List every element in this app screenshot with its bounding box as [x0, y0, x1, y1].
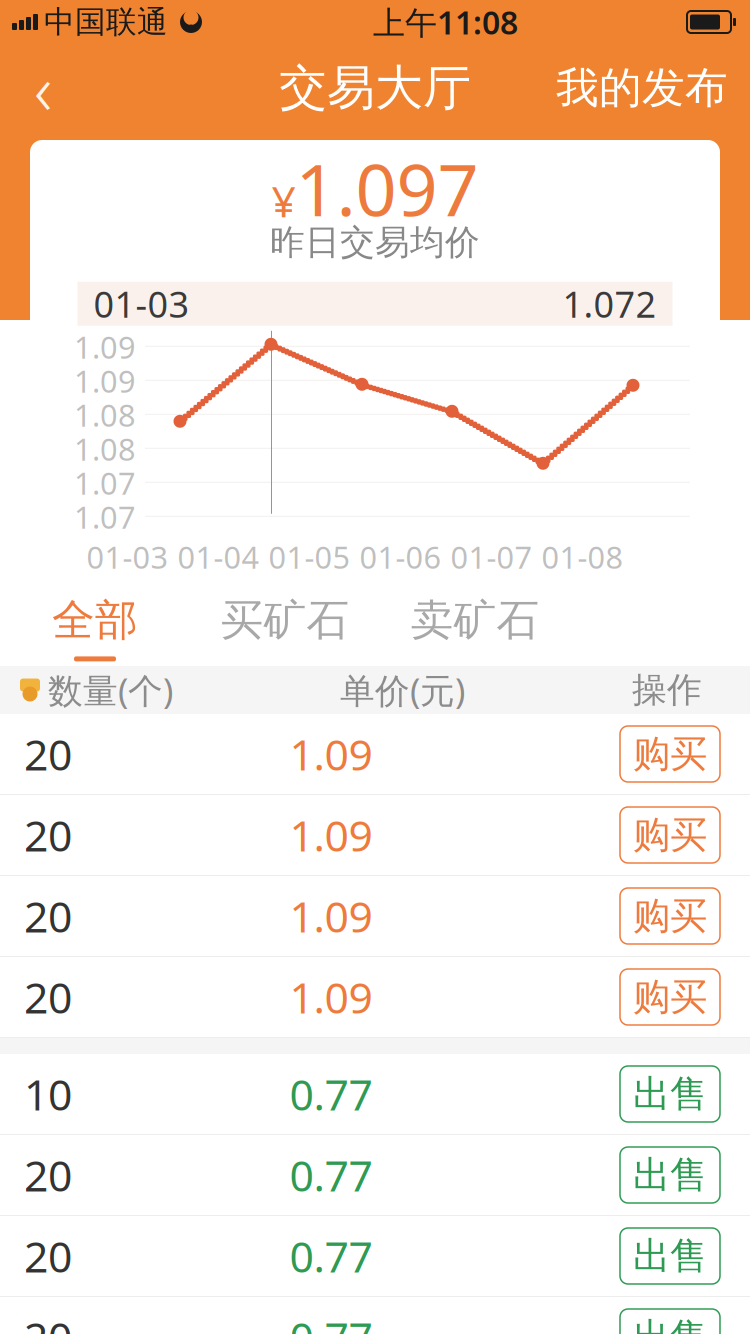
staticText: 1.07 [74, 496, 136, 537]
staticText: 出售 [633, 1071, 707, 1117]
staticText: 1.097 [295, 140, 478, 236]
button[interactable]: 全部 [0, 574, 190, 666]
staticText: 购买 [633, 812, 707, 858]
staticText: 0.77 [289, 1066, 372, 1122]
staticText: 1.09 [74, 326, 136, 367]
staticText: 20 [24, 1147, 72, 1203]
button[interactable]: 20 [0, 1297, 750, 1334]
staticText: 20 [24, 888, 72, 944]
button[interactable]: 20 [0, 1135, 750, 1216]
staticText: 1.072 [562, 280, 656, 328]
button[interactable]: 卖矿石 [380, 574, 570, 666]
staticText: 中国联通 [44, 3, 168, 41]
staticText: 01-05 [268, 536, 350, 577]
staticText: 购买 [633, 974, 707, 1020]
button[interactable]: 20 [0, 957, 750, 1038]
staticText: ¥ [271, 172, 295, 229]
staticText: 购买 [633, 731, 707, 777]
staticText: 1.09 [74, 360, 136, 401]
staticText: ‹ [34, 42, 52, 134]
staticText: 01-06 [359, 536, 441, 577]
staticText: 出售 [633, 1152, 707, 1198]
staticText: 20 [24, 969, 72, 1025]
staticText: 20 [24, 807, 72, 863]
staticText: 01-08 [541, 536, 623, 577]
staticText: 0.77 [289, 1309, 372, 1334]
staticText: 我的发布 [556, 62, 728, 114]
button[interactable]: 10 [0, 1054, 750, 1135]
staticText: 出售 [633, 1233, 707, 1279]
button[interactable]: 买矿石 [190, 574, 380, 666]
staticText: 1.09 [289, 807, 372, 863]
staticText: 1.08 [74, 394, 136, 435]
staticText: 20 [24, 1228, 72, 1284]
staticText: 0.77 [289, 1147, 372, 1203]
staticText: 01-04 [177, 536, 259, 577]
staticText: 1.09 [289, 969, 372, 1025]
staticText: 1.09 [289, 888, 372, 944]
staticText: 1.09 [289, 726, 372, 782]
staticText: 数量(个) [48, 667, 173, 713]
staticText: 20 [24, 1309, 72, 1334]
button[interactable]: 返回 [0, 44, 86, 132]
button[interactable]: 20 [0, 876, 750, 957]
staticText: 10 [24, 1066, 72, 1122]
staticText: 0.77 [289, 1228, 372, 1284]
staticText: 操作 [632, 669, 702, 711]
staticText: 出售 [633, 1314, 707, 1334]
staticText: 交易大厅 [279, 58, 471, 117]
staticText: 买矿石 [220, 594, 349, 646]
staticText: 1.07 [74, 462, 136, 503]
staticText: 全部 [52, 594, 138, 646]
staticText: 单价(元) [340, 667, 465, 713]
staticText: 卖矿石 [410, 594, 539, 646]
staticText: 01-03 [93, 280, 189, 328]
staticText: 01-07 [450, 536, 532, 577]
staticText: 1.08 [74, 428, 136, 469]
staticText: 上午11:08 [373, 1, 518, 43]
staticText: 01-03 [86, 536, 168, 577]
staticText: 20 [24, 726, 72, 782]
button[interactable]: 20 [0, 795, 750, 876]
staticText: 购买 [633, 893, 707, 939]
button[interactable]: 20 [0, 1216, 750, 1297]
button[interactable]: 我的发布 [534, 44, 750, 132]
button[interactable]: 20 [0, 714, 750, 795]
staticText: 昨日交易均价 [270, 221, 480, 264]
